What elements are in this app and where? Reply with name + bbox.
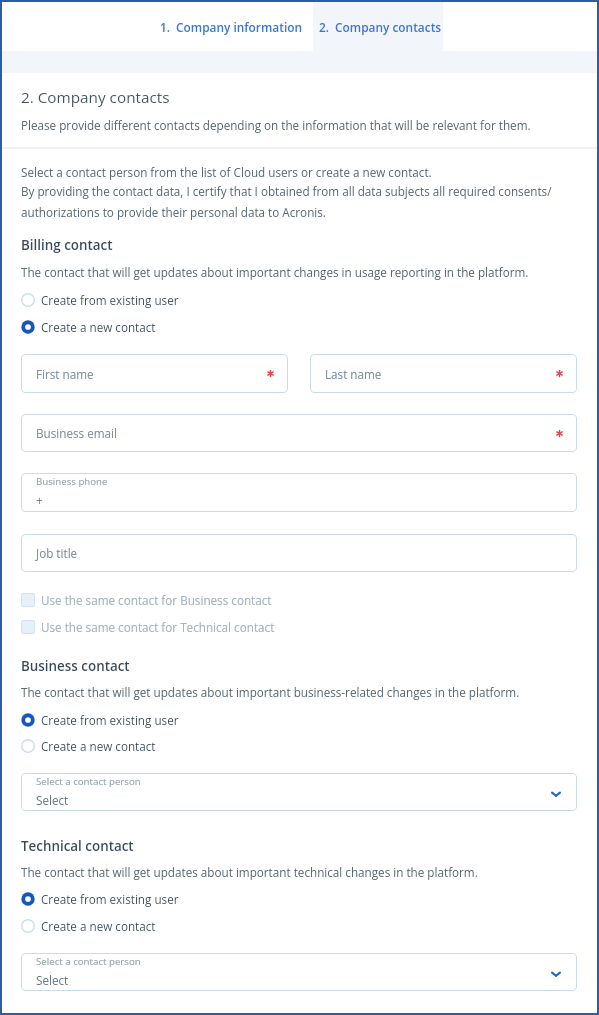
staticText: authorizations to provide their personal…: [21, 204, 326, 220]
staticText: Business email: [36, 425, 117, 441]
staticText: The contact that will get updates about …: [21, 864, 478, 880]
staticText: 1. Company information: [160, 19, 303, 35]
staticText: Billing contact: [21, 236, 113, 254]
staticText: Select: [36, 792, 69, 808]
staticText: Technical contact: [21, 837, 134, 855]
button[interactable]: Last name: [310, 354, 577, 393]
staticText: Job title: [36, 545, 78, 561]
staticText: Create from existing user: [41, 292, 179, 308]
staticText: Select: [36, 972, 69, 988]
staticText: Business contact: [21, 657, 130, 675]
staticText: Use the same contact for Business contac…: [41, 592, 272, 608]
button[interactable]: Business email: [21, 414, 577, 452]
staticText: Create a new contact: [41, 918, 156, 934]
staticText: First name: [36, 366, 94, 382]
staticText: Please provide different contacts depend…: [21, 117, 531, 133]
button[interactable]: Create from existing user: [21, 888, 271, 910]
staticText: +: [36, 492, 43, 508]
button[interactable]: 1. Company information: [151, 2, 312, 51]
staticText: Create from existing user: [41, 891, 179, 907]
button[interactable]: Use the same contact for Technical conta…: [21, 616, 321, 638]
button[interactable]: Create from existing user: [21, 289, 271, 311]
button[interactable]: Create from existing user: [21, 709, 271, 731]
staticText: The contact that will get updates about …: [21, 264, 529, 280]
button[interactable]: Create a new contact: [21, 316, 271, 338]
staticText: Select a contact person: [36, 775, 141, 788]
staticText: Business phone: [36, 475, 108, 488]
staticText: By providing the contact data, I certify…: [21, 183, 552, 199]
staticText: Use the same contact for Technical conta…: [41, 619, 275, 635]
button[interactable]: Create a new contact: [21, 735, 271, 757]
staticText: Create a new contact: [41, 738, 156, 754]
staticText: 2. Company contacts: [319, 19, 442, 35]
button[interactable]: Business phone: [21, 473, 577, 512]
button[interactable]: Use the same contact for Business contac…: [21, 589, 321, 611]
staticText: Select a contact person: [36, 955, 141, 968]
button[interactable]: Create a new contact: [21, 915, 271, 937]
staticText: Create from existing user: [41, 712, 179, 728]
button[interactable]: Select a contact person: [21, 773, 577, 811]
staticText: Create a new contact: [41, 319, 156, 335]
button[interactable]: 2. Company contacts: [315, 2, 445, 51]
button[interactable]: Job title: [21, 534, 577, 572]
button[interactable]: First name: [21, 354, 288, 393]
staticText: The contact that will get updates about …: [21, 684, 520, 700]
staticText: 2. Company contacts: [21, 87, 170, 108]
staticText: Last name: [325, 366, 382, 382]
button[interactable]: Select a contact person: [21, 953, 577, 991]
staticText: Select a contact person from the list of…: [21, 164, 432, 180]
